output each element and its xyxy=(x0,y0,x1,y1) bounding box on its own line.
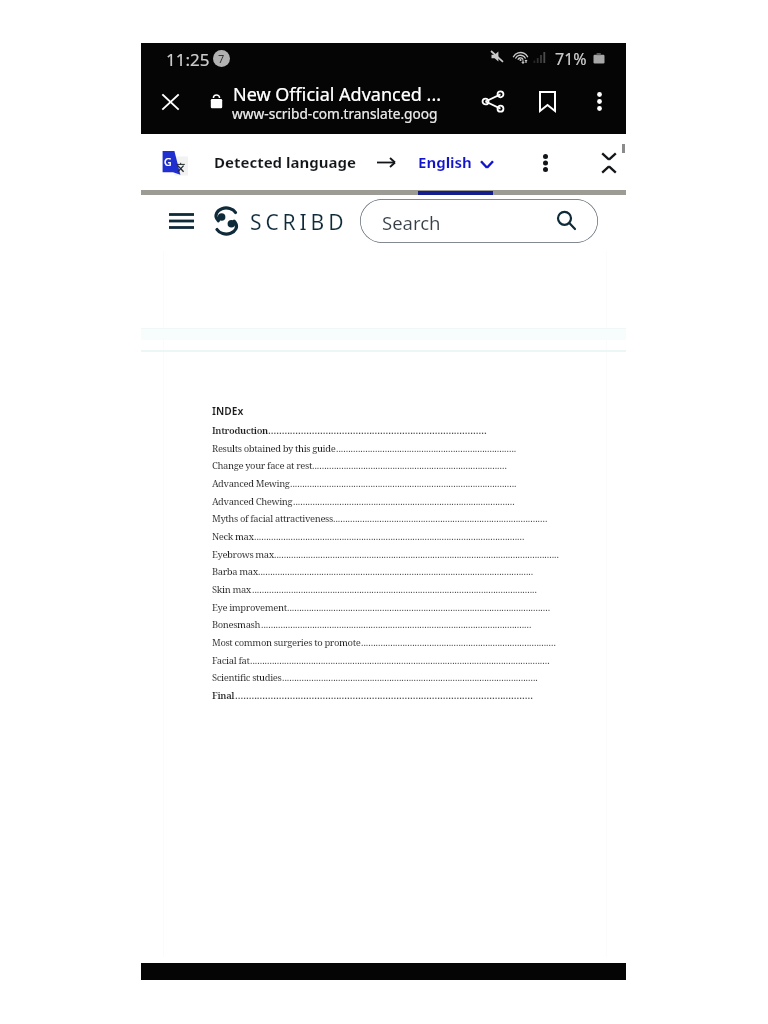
staticText: Facial fat xyxy=(212,654,250,667)
staticText: Barba max xyxy=(212,565,258,578)
staticText: Bonesmash xyxy=(212,618,261,631)
staticText: ........................................… xyxy=(333,512,548,525)
staticText: ........................................… xyxy=(312,459,509,472)
staticText: INDEx xyxy=(212,404,244,418)
staticText: Eye improvement xyxy=(212,601,287,614)
staticText: Results obtained by this guide xyxy=(212,442,336,455)
staticText: Neck max xyxy=(212,530,254,543)
button[interactable]: Google Translate xyxy=(162,151,190,179)
staticText: ........................................… xyxy=(250,654,552,667)
staticText: ........................................… xyxy=(258,565,534,578)
staticText: ........................................… xyxy=(274,548,561,561)
staticText: ........................................… xyxy=(235,689,535,702)
button[interactable]: Collapse xyxy=(587,141,630,184)
staticText: SCRIBD xyxy=(250,208,348,237)
staticText: Advanced Mewing xyxy=(212,477,290,490)
button[interactable]: English xyxy=(418,143,494,181)
button[interactable]: Menu xyxy=(161,205,201,237)
staticText: ........................................… xyxy=(336,442,518,455)
staticText: 71% xyxy=(555,48,587,70)
staticText: ........................................… xyxy=(254,530,525,543)
staticText: www-scribd-com.translate.goog xyxy=(232,104,467,123)
button[interactable]: Bookmark xyxy=(525,79,570,124)
staticText: ........................................… xyxy=(287,601,552,614)
staticText: Skin max xyxy=(212,583,252,596)
staticText: ........................................… xyxy=(290,477,518,490)
staticText: Final xyxy=(212,689,235,702)
button[interactable]: Translate options xyxy=(524,141,567,184)
staticText: Change your face at rest xyxy=(212,459,312,472)
button[interactable]: Share xyxy=(470,79,515,124)
staticText: ........................................… xyxy=(252,583,537,596)
button[interactable]: More options xyxy=(577,79,622,124)
staticText: ........................................… xyxy=(361,636,557,649)
staticText: G xyxy=(164,155,172,169)
staticText: Introduction xyxy=(212,424,268,437)
staticText: New Official Advanced ... xyxy=(233,82,468,107)
staticText: ........................................… xyxy=(268,424,489,437)
button[interactable]: New Official Advanced ... xyxy=(201,76,466,126)
staticText: Myths of facial attractiveness xyxy=(212,512,333,525)
staticText: English xyxy=(418,152,472,172)
staticText: ........................................… xyxy=(293,495,516,508)
staticText: 7 xyxy=(218,51,225,66)
staticText: 11:25 xyxy=(166,48,210,71)
staticText: Most common surgeries to promote xyxy=(212,636,361,649)
staticText: Eyebrows max xyxy=(212,548,274,561)
staticText: Advanced Chewing xyxy=(212,495,293,508)
button[interactable]: Search xyxy=(360,199,598,243)
staticText: ........................................… xyxy=(282,671,539,684)
staticText: Scientific studies xyxy=(212,671,282,684)
button[interactable]: Close xyxy=(148,79,193,124)
staticText: Search xyxy=(382,210,441,235)
staticText: ........................................… xyxy=(261,618,533,631)
button[interactable]: Detected language xyxy=(214,143,356,181)
staticText: Detected language xyxy=(214,152,356,172)
